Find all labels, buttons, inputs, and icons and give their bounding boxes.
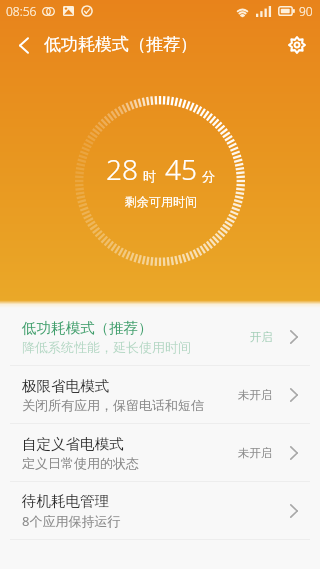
button[interactable]: Back (2, 22, 46, 68)
staticText: 08:56 (6, 3, 37, 19)
staticText: 降低系统性能，延长使用时间 (22, 339, 191, 355)
button[interactable]: 低功耗模式（推荐） (0, 308, 320, 365)
staticText: 剩余可用时间 (125, 194, 197, 209)
staticText: 自定义省电模式 (22, 435, 124, 453)
staticText: 待机耗电管理 (22, 492, 109, 510)
staticText: 28 (106, 150, 138, 188)
staticText: 90 (299, 3, 313, 19)
button[interactable]: 自定义省电模式 (0, 424, 320, 481)
staticText: 极限省电模式 (22, 377, 109, 395)
staticText: 未开启 (238, 446, 273, 460)
staticText: 8个应用保持运行 (22, 512, 121, 530)
staticText: 定义日常使用的状态 (22, 455, 139, 471)
staticText: 未开启 (238, 388, 273, 402)
staticText: 低功耗模式（推荐） (22, 319, 153, 337)
staticText: 低功耗模式（推荐） (44, 34, 197, 55)
button[interactable]: Settings (274, 22, 320, 68)
staticText: 时 (143, 168, 156, 184)
staticText: 开启 (250, 330, 273, 344)
staticText: 关闭所有应用，保留电话和短信 (22, 397, 204, 413)
button[interactable]: 极限省电模式 (0, 366, 320, 423)
staticText: 45 (165, 150, 197, 188)
button[interactable]: 待机耗电管理 (0, 482, 320, 539)
staticText: 分 (202, 168, 215, 184)
